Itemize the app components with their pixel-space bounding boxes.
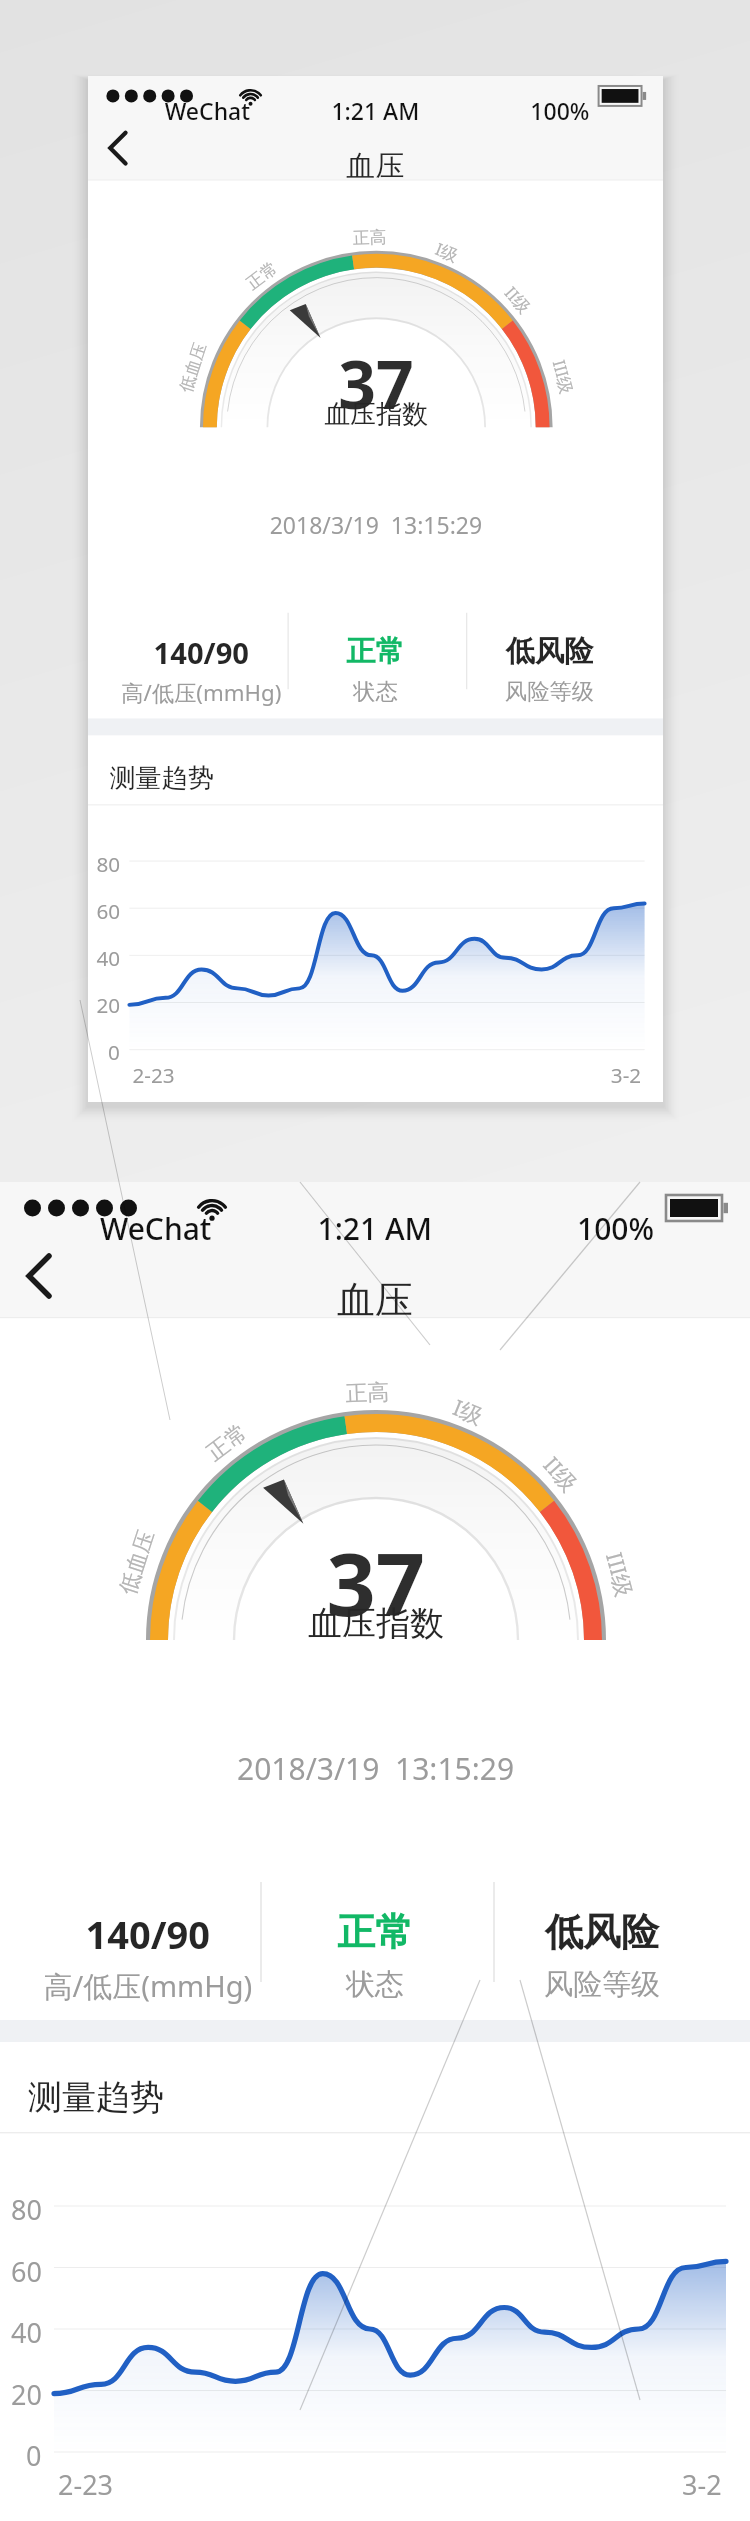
button[interactable]: Blood pressure detail <box>0 0 750 2521</box>
